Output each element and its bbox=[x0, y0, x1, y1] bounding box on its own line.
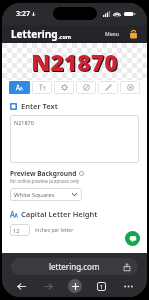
button[interactable]: Color bbox=[76, 81, 96, 94]
staticText: Menu bbox=[105, 31, 119, 38]
button[interactable]: Tabs bbox=[94, 279, 108, 293]
staticText: Capital Letter Height bbox=[21, 209, 98, 219]
staticText: White Squares bbox=[14, 191, 55, 199]
staticText: Preview Background bbox=[10, 169, 77, 178]
button[interactable]: Text size bbox=[32, 81, 52, 94]
button[interactable]: Shape bbox=[120, 81, 140, 94]
button[interactable]: Forward bbox=[41, 279, 55, 293]
staticText: N21870 bbox=[14, 119, 34, 126]
button[interactable]: Back bbox=[14, 279, 28, 293]
button[interactable]: lettering.com bbox=[11, 258, 138, 275]
button[interactable]: Share bbox=[123, 263, 131, 271]
staticText: 3:27 bbox=[16, 9, 30, 19]
staticText: Lettering bbox=[11, 27, 58, 41]
staticText: for online preview purposes only bbox=[10, 178, 80, 184]
other: Info bbox=[79, 171, 84, 176]
button[interactable]: Line bbox=[98, 81, 118, 94]
button[interactable]: White Squares bbox=[10, 188, 82, 201]
staticText: N21870 bbox=[31, 46, 118, 77]
staticText: 1 bbox=[100, 283, 104, 290]
button[interactable]: New tab bbox=[68, 279, 82, 293]
button[interactable]: 12 bbox=[10, 224, 30, 236]
button[interactable]: Menu bbox=[103, 29, 121, 40]
staticText: .com bbox=[58, 33, 72, 40]
button[interactable]: Font bbox=[9, 81, 30, 94]
button[interactable]: Lettering bbox=[11, 27, 72, 41]
button[interactable]: Settings bbox=[54, 81, 74, 94]
button[interactable]: More options bbox=[121, 279, 135, 293]
staticText: lettering.com bbox=[49, 261, 100, 272]
staticText: inches per letter bbox=[35, 227, 74, 234]
button[interactable]: N21870 bbox=[10, 115, 139, 163]
staticText: Enter Text bbox=[21, 101, 58, 111]
staticText: 12 bbox=[13, 227, 20, 234]
staticText: N21870 bbox=[32, 47, 119, 78]
button[interactable]: Cart bbox=[128, 29, 139, 40]
button[interactable]: Chat bbox=[125, 231, 140, 246]
